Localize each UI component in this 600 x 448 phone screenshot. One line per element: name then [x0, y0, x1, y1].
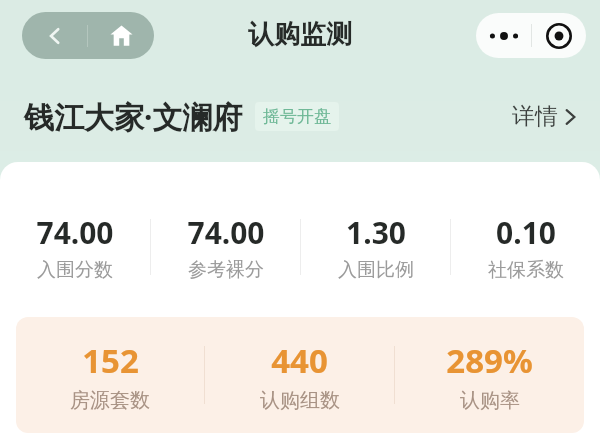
button[interactable]: 1.30: [301, 210, 450, 284]
button[interactable]: Close: [532, 13, 586, 58]
staticText: 入围比例: [338, 258, 414, 282]
staticText: 152: [82, 338, 139, 383]
staticText: 摇号开盘: [263, 106, 331, 127]
staticText: 440: [271, 338, 328, 383]
staticText: 社保系数: [488, 258, 564, 282]
staticText: 认购率: [460, 388, 520, 413]
button[interactable]: More: [476, 13, 531, 58]
staticText: 认购组数: [260, 388, 340, 413]
button[interactable]: 152: [16, 336, 204, 415]
button[interactable]: 详情: [508, 96, 580, 137]
button[interactable]: Home: [88, 12, 154, 59]
button[interactable]: Back: [22, 12, 87, 59]
staticText: 74.00: [187, 212, 265, 253]
staticText: 详情: [512, 102, 558, 131]
button[interactable]: 289%: [395, 336, 584, 415]
staticText: 参考裸分: [188, 258, 264, 282]
staticText: 房源套数: [70, 388, 150, 413]
staticText: 钱江大家·文澜府: [24, 96, 243, 137]
staticText: 0.10: [496, 212, 556, 253]
staticText: 289%: [446, 338, 533, 383]
staticText: 入围分数: [37, 258, 113, 282]
button[interactable]: 74.00: [151, 210, 300, 284]
button[interactable]: 440: [205, 336, 394, 415]
staticText: 1.30: [346, 212, 406, 253]
staticText: 74.00: [36, 212, 114, 253]
staticText: 认购监测: [248, 18, 352, 51]
button[interactable]: 0.10: [451, 210, 600, 284]
button[interactable]: 74.00: [0, 210, 150, 284]
